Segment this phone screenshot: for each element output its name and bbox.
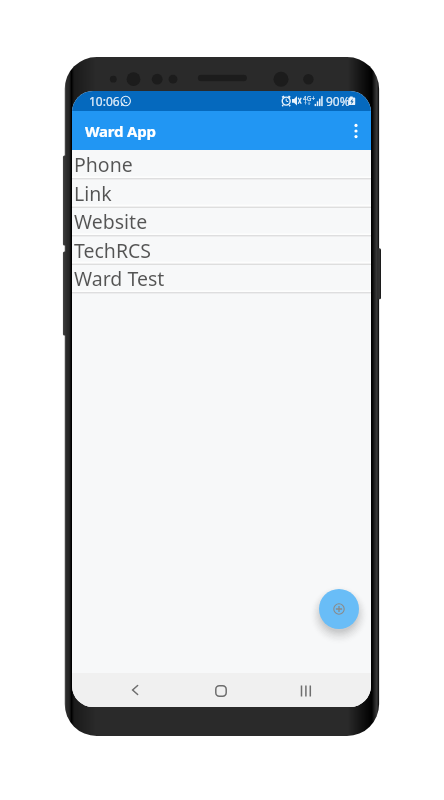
button[interactable]: TechRCS: [72, 236, 371, 265]
staticText: Phone: [74, 151, 133, 178]
button[interactable]: Back: [129, 684, 141, 696]
staticText: 90%: [326, 93, 350, 109]
button[interactable]: Link: [72, 179, 371, 208]
button[interactable]: Recents: [300, 685, 312, 697]
staticText: 10:06: [89, 93, 120, 109]
staticText: Link: [74, 180, 112, 207]
staticText: TechRCS: [74, 237, 152, 264]
button[interactable]: Ward Test: [72, 264, 371, 293]
button[interactable]: Add: [319, 589, 359, 629]
button[interactable]: More options: [342, 117, 370, 145]
staticText: Ward App: [85, 121, 156, 141]
button[interactable]: Website: [72, 207, 371, 236]
staticText: 4G+: [303, 94, 316, 103]
staticText: Website: [74, 208, 148, 235]
staticText: Ward Test: [74, 265, 165, 292]
button[interactable]: Home: [215, 685, 227, 697]
button[interactable]: Phone: [72, 150, 371, 179]
